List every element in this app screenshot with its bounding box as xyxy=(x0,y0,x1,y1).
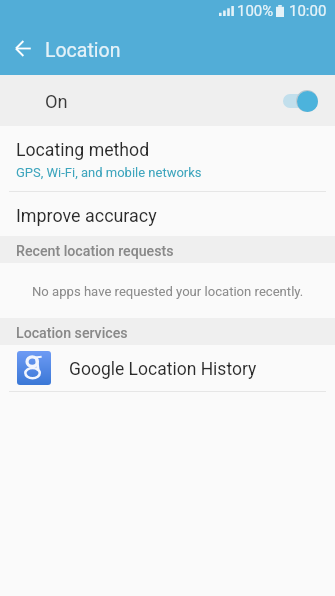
staticText: Location services xyxy=(16,325,128,342)
staticText: Improve accuracy xyxy=(16,205,157,226)
staticText: GPS, Wi-Fi, and mobile networks xyxy=(16,165,202,180)
button[interactable]: On xyxy=(0,75,335,126)
staticText: No apps have requested your location rec… xyxy=(32,284,304,299)
button[interactable]: Improve accuracy xyxy=(0,192,335,236)
staticText: 100% xyxy=(237,2,274,20)
staticText: Recent location requests xyxy=(16,243,174,260)
button[interactable]: Google Location History xyxy=(0,345,335,391)
button[interactable]: Navigate up xyxy=(7,32,39,64)
staticText: Google Location History xyxy=(69,359,257,380)
staticText: Location xyxy=(45,39,121,62)
staticText: On xyxy=(45,91,68,112)
button[interactable]: Locating method xyxy=(0,126,335,191)
staticText: 10:00 xyxy=(289,2,327,20)
staticText: Locating method xyxy=(16,140,150,161)
